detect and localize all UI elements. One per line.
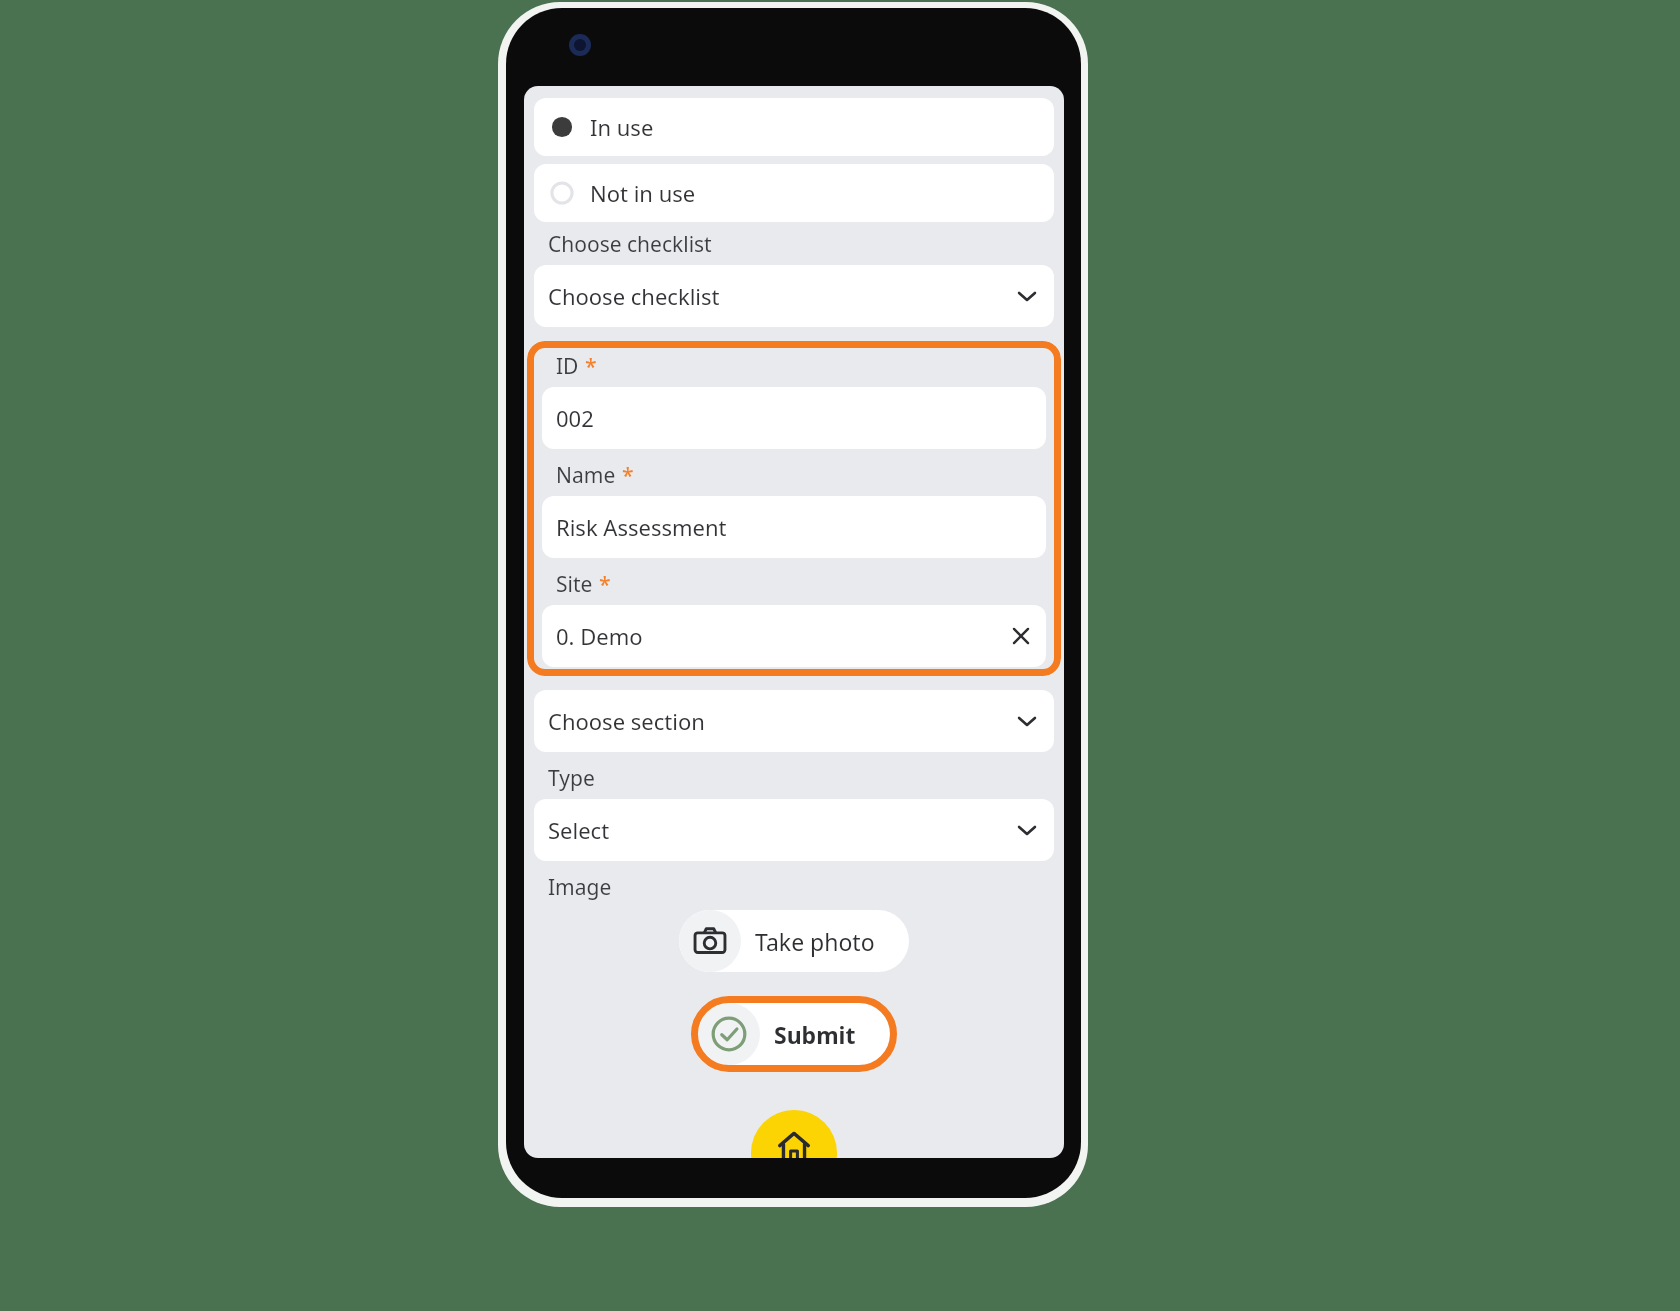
staticText: Choose checklist xyxy=(548,281,1016,311)
button[interactable]: Home xyxy=(751,1110,837,1158)
staticText: Risk Assessment xyxy=(556,512,1032,542)
staticText: Select xyxy=(548,815,1016,845)
staticText: Not in use xyxy=(590,178,696,208)
staticText: In use xyxy=(590,112,654,142)
button[interactable]: Select xyxy=(534,799,1054,861)
staticText: Choose section xyxy=(548,706,1016,736)
staticText: * xyxy=(622,461,634,490)
staticText: * xyxy=(585,352,597,381)
button[interactable]: 0. Demo xyxy=(542,605,1046,667)
button[interactable]: Risk Assessment xyxy=(542,496,1046,558)
other: Expand xyxy=(1016,819,1038,841)
staticText: Site xyxy=(556,570,593,599)
button[interactable]: Submit xyxy=(698,1003,890,1065)
staticText: Type xyxy=(548,764,595,793)
other: Expand xyxy=(1016,710,1038,732)
button[interactable]: In use xyxy=(534,98,1054,156)
button[interactable]: Not in use xyxy=(534,164,1054,222)
other: Expand xyxy=(1016,285,1038,307)
staticText: 002 xyxy=(556,403,1032,433)
staticText: * xyxy=(599,570,611,599)
staticText: Submit xyxy=(774,1019,856,1050)
staticText: Image xyxy=(548,873,612,902)
staticText: ID xyxy=(556,352,579,381)
staticText: 0. Demo xyxy=(556,621,1010,651)
staticText: Choose checklist xyxy=(548,230,712,259)
staticText: Take photo xyxy=(755,926,875,957)
button[interactable]: Take photo xyxy=(679,910,909,972)
staticText: Name xyxy=(556,461,616,490)
button[interactable]: Choose section xyxy=(534,690,1054,752)
button[interactable]: Choose checklist xyxy=(534,265,1054,327)
other: Clear xyxy=(1010,625,1032,647)
button[interactable]: 002 xyxy=(542,387,1046,449)
